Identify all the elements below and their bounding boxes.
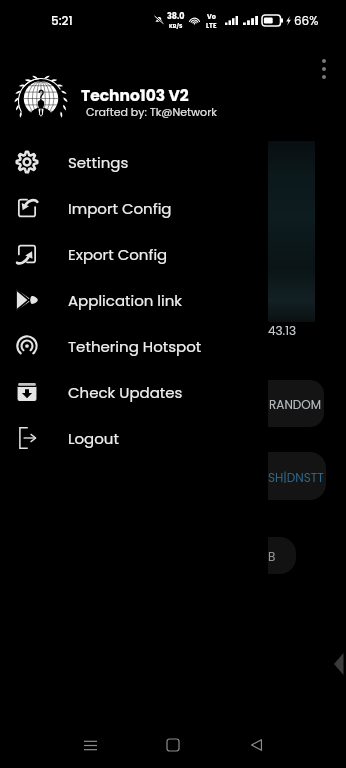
staticText: KB/S — [169, 22, 183, 30]
staticText: B — [268, 548, 276, 565]
staticText: Check Updates — [68, 382, 183, 403]
staticText: 38.0 — [167, 11, 185, 22]
button[interactable]: Settings — [0, 139, 268, 185]
button[interactable]: Check Updates — [0, 369, 268, 415]
staticText: Logout — [68, 428, 119, 449]
button[interactable]: Tethering Hotspot — [0, 323, 268, 369]
staticText: Application link — [68, 290, 183, 311]
button[interactable]: Logout — [0, 415, 268, 461]
staticText: Tethering Hotspot — [68, 336, 202, 357]
button[interactable]: Home — [151, 725, 195, 765]
staticText: 43.13 — [268, 322, 297, 339]
button[interactable] — [262, 537, 296, 574]
staticText: Settings — [68, 152, 129, 173]
staticText: 5:21 — [51, 12, 73, 29]
staticText: LTE — [206, 21, 217, 30]
staticText: RANDOM — [269, 396, 322, 413]
staticText: Crafted by: Tk@Network — [86, 104, 217, 119]
button[interactable]: Back — [234, 725, 278, 765]
button[interactable]: Application link — [0, 277, 268, 323]
staticText: Techno103 V2 — [81, 85, 189, 107]
button[interactable]: Import Config — [0, 185, 268, 231]
button[interactable]: More options — [312, 52, 336, 80]
button[interactable] — [262, 452, 326, 500]
button[interactable]: Export Config — [0, 231, 268, 277]
staticText: Import Config — [68, 198, 172, 219]
staticText: Export Config — [68, 244, 168, 265]
staticText: SH|DNSTT — [268, 469, 324, 486]
staticText: 66% — [294, 12, 319, 29]
staticText: Vo — [207, 12, 216, 21]
button[interactable] — [262, 380, 324, 427]
button[interactable]: Recent apps — [68, 725, 112, 765]
